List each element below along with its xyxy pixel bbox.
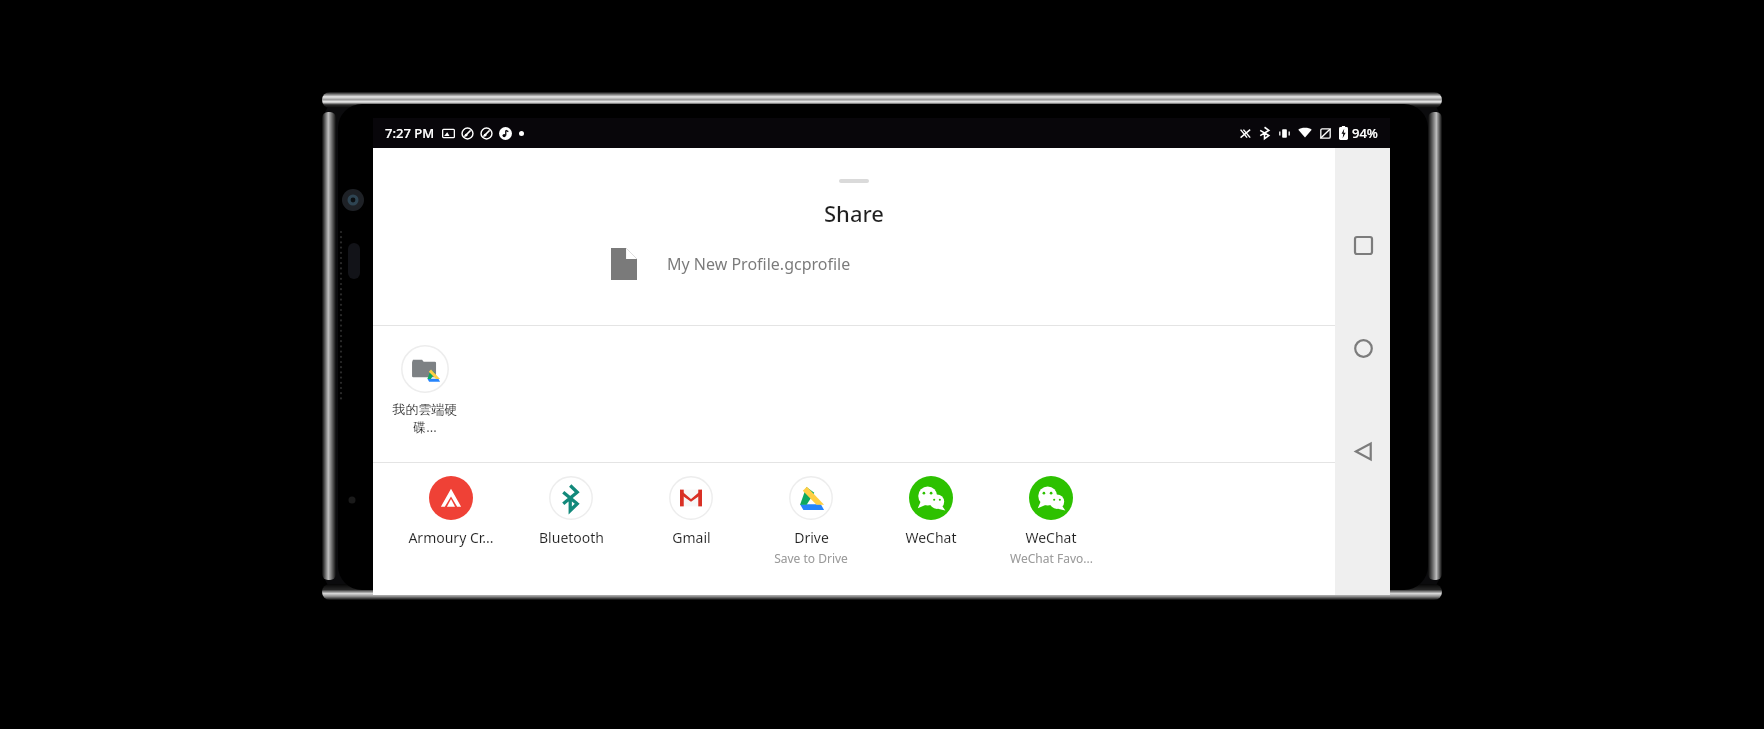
button[interactable]: Recent apps [1341,223,1385,267]
staticText: Drive [794,528,829,547]
staticText: Share [824,198,884,228]
staticText: Bluetooth [539,528,604,547]
staticText: WeChat [1025,528,1077,547]
button[interactable]: Home [1341,326,1385,370]
staticText: Armoury Cr... [408,528,494,547]
staticText: 7:27 PM [385,124,435,142]
staticText: Save to Drive [774,550,848,566]
button[interactable]: Armoury Cr... [391,474,511,547]
button[interactable]: Back [1341,429,1385,473]
button[interactable]: WeChat [871,474,991,547]
button[interactable]: Drive [751,474,871,566]
button[interactable]: Bluetooth [511,474,631,547]
button[interactable]: Gmail [631,474,751,547]
staticText: Gmail [672,528,711,547]
staticText: My New Profile.gcprofile [667,253,851,275]
staticText: 我的雲端硬碟... [381,401,469,436]
button[interactable]: WeChat [991,474,1111,566]
button[interactable]: My New Profile.gcprofile [611,248,851,280]
staticText: 94% [1352,124,1378,142]
button[interactable]: 我的雲端硬碟... [381,341,469,436]
staticText: WeChat [905,528,957,547]
staticText: WeChat Favo... [1010,550,1093,566]
